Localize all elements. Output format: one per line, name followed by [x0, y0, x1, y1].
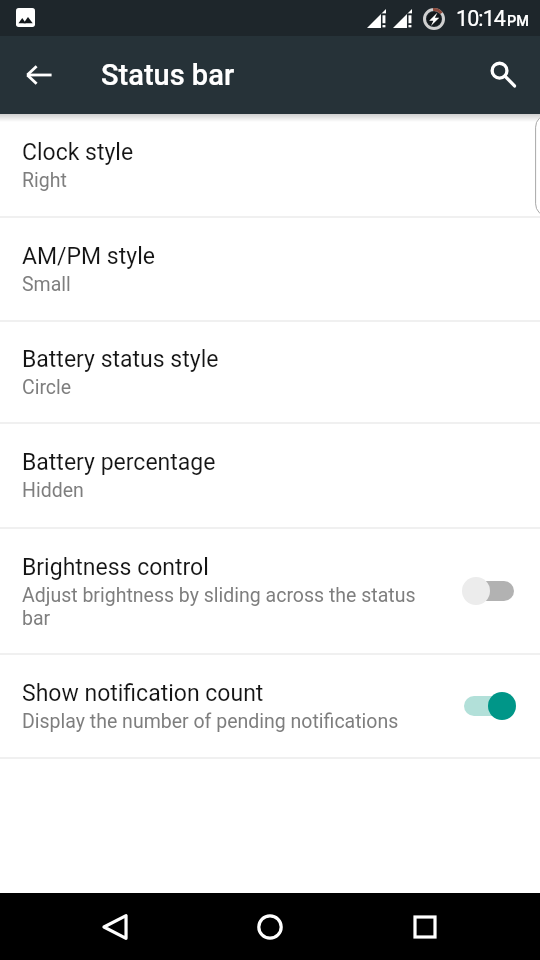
staticText: Battery percentage [22, 449, 216, 476]
staticText: Circle [22, 376, 72, 399]
staticText: AM/PM style [22, 243, 155, 270]
staticText: Adjust brightness by sliding across the … [22, 584, 426, 630]
staticText: Hidden [22, 479, 84, 502]
staticText: Clock style [22, 139, 134, 166]
button[interactable]: Recent apps [394, 896, 456, 958]
button[interactable]: Toggle off [458, 569, 520, 613]
staticText: Small [22, 273, 71, 296]
button[interactable]: Search [474, 46, 532, 104]
staticText: Status bar [101, 58, 235, 92]
button[interactable]: Battery status style [0, 322, 540, 422]
staticText: Brightness control [22, 554, 209, 581]
staticText: PM [507, 13, 529, 30]
button[interactable]: Back [84, 896, 146, 958]
button[interactable]: AM/PM style [0, 218, 540, 320]
button[interactable]: Clock style [0, 114, 540, 216]
staticText: Right [22, 169, 67, 192]
button[interactable]: Navigate up [10, 46, 68, 104]
staticText: Battery status style [22, 346, 219, 373]
staticText: Show notification count [22, 680, 264, 707]
button[interactable]: Show notification count [0, 655, 540, 757]
button[interactable]: Battery percentage [0, 424, 540, 527]
button[interactable]: Home [239, 896, 301, 958]
staticText: Display the number of pending notificati… [22, 710, 399, 733]
button[interactable]: Toggle on [458, 684, 520, 728]
button[interactable]: Brightness control [0, 529, 540, 653]
staticText: 10:14 [456, 6, 506, 31]
